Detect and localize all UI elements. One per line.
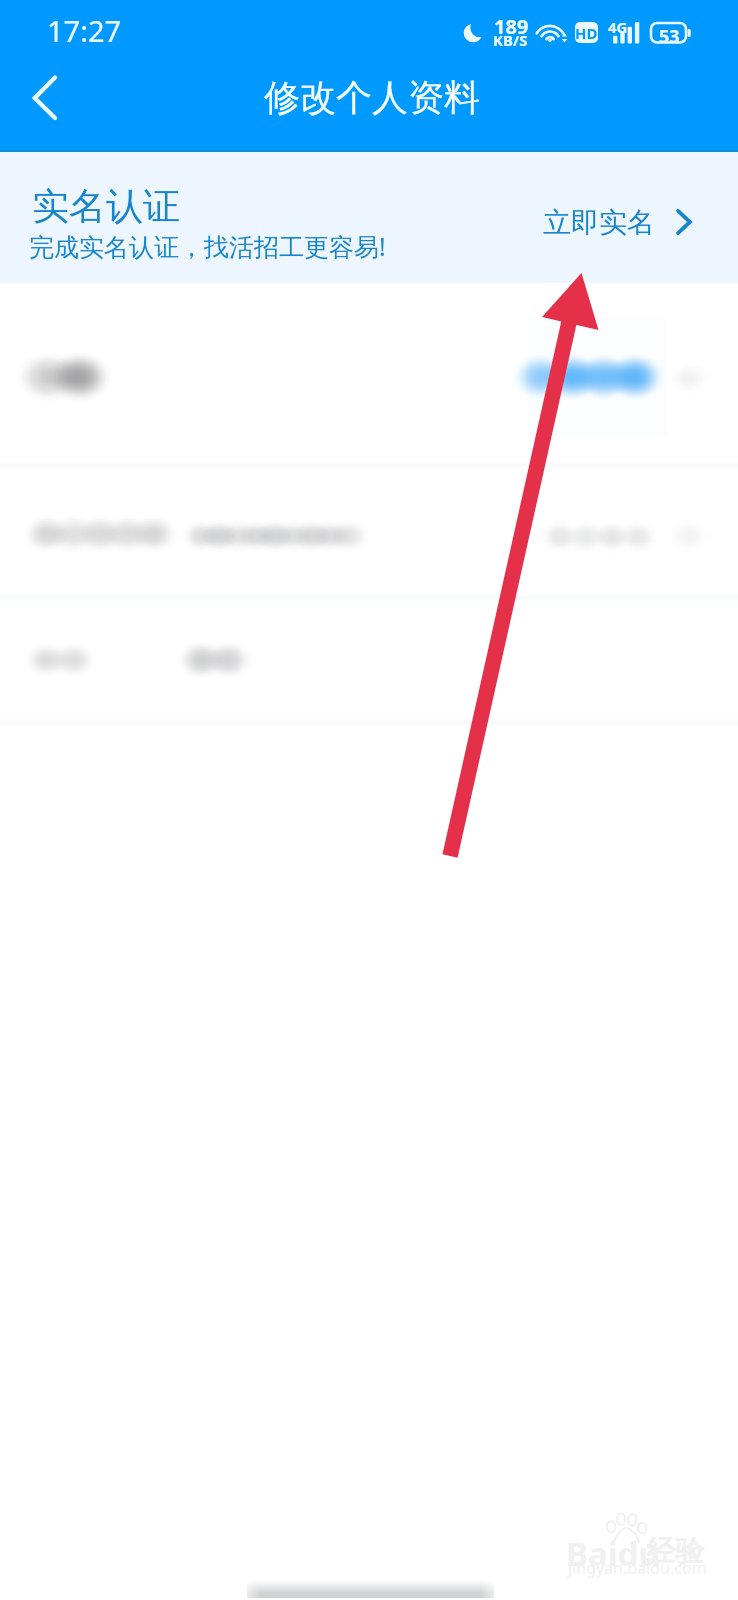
button[interactable] xyxy=(0,283,738,465)
staticText: 17:27 xyxy=(47,11,122,50)
staticText: 完成实名认证，找活招工更容易! xyxy=(29,229,386,263)
staticText: 4G xyxy=(608,17,628,37)
button[interactable] xyxy=(0,465,738,597)
staticText: HD xyxy=(575,23,598,43)
staticText: Baidu xyxy=(566,1531,660,1576)
staticText: 立即实名 xyxy=(543,205,655,240)
staticText: jingyan.baidu.com xyxy=(568,1557,707,1579)
button[interactable] xyxy=(0,597,738,722)
staticText: 53 xyxy=(659,24,680,49)
staticText: 修改个人资料 xyxy=(264,75,480,120)
staticText: 实名认证 xyxy=(32,183,180,230)
staticText: 经验 xyxy=(646,1533,704,1570)
button[interactable]: Back xyxy=(10,58,90,138)
button[interactable]: 实名认证 xyxy=(0,154,738,283)
staticText: 189 xyxy=(494,13,529,40)
staticText: KB/S xyxy=(493,30,528,50)
